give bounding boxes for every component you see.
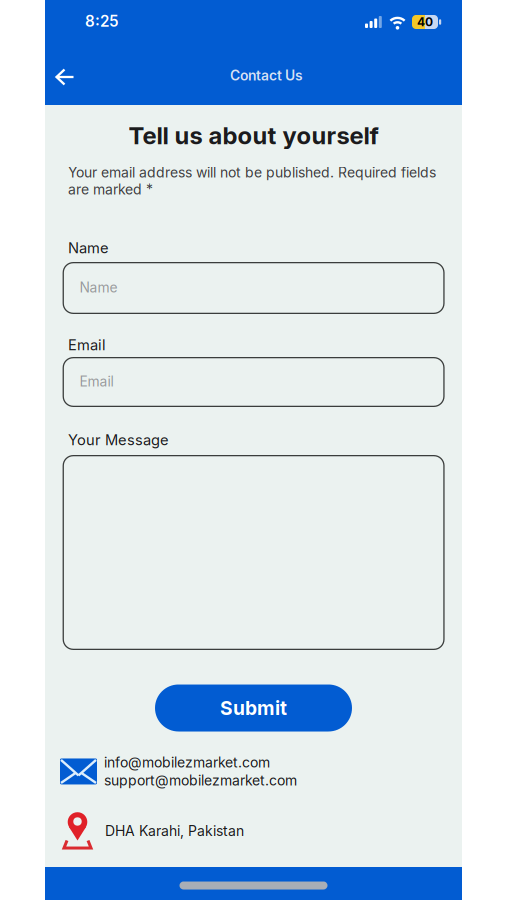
staticText: Contact Us bbox=[230, 67, 303, 84]
staticText: Name bbox=[68, 239, 109, 257]
staticText: Your email address will not be published… bbox=[68, 164, 436, 181]
staticText: Email bbox=[68, 336, 106, 354]
button[interactable]: Back bbox=[55, 67, 75, 87]
button[interactable]: DHA Karahi, Pakistan bbox=[61, 811, 244, 851]
staticText: 40 bbox=[417, 15, 433, 29]
button[interactable]: Name bbox=[63, 262, 445, 314]
button[interactable]: Submit bbox=[155, 684, 352, 731]
button[interactable]: Email bbox=[63, 357, 445, 407]
staticText: 8:25 bbox=[85, 12, 119, 30]
staticText: Email bbox=[80, 373, 114, 390]
staticText: Tell us about yourself bbox=[128, 121, 378, 150]
staticText: info@mobilezmarket.com bbox=[104, 754, 270, 771]
staticText: are marked * bbox=[68, 181, 153, 198]
staticText: Submit bbox=[220, 696, 287, 720]
staticText: support@mobilezmarket.com bbox=[104, 772, 297, 789]
staticText: DHA Karahi, Pakistan bbox=[105, 822, 244, 839]
button[interactable]: Email us bbox=[60, 754, 297, 789]
staticText: Name bbox=[80, 279, 118, 296]
button[interactable]: Your Message bbox=[63, 455, 445, 650]
staticText: Your Message bbox=[68, 431, 169, 449]
